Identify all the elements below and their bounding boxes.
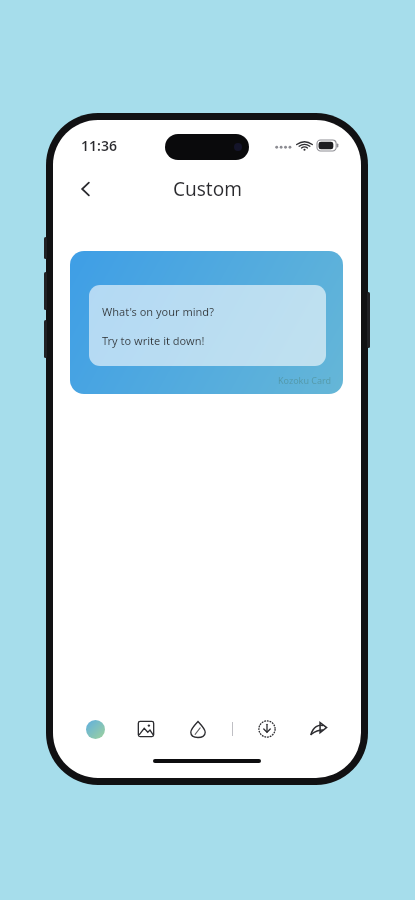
button[interactable]: Share bbox=[301, 711, 337, 747]
button[interactable]: Download bbox=[249, 711, 285, 747]
staticText: Try to write it down! bbox=[102, 333, 205, 348]
button[interactable]: Back bbox=[65, 168, 107, 210]
staticText: What's on your mind? bbox=[102, 304, 214, 319]
staticText: Kozoku Card bbox=[278, 374, 332, 386]
button[interactable]: What's on your mind? bbox=[70, 251, 343, 394]
button[interactable]: Opacity bbox=[180, 711, 216, 747]
staticText: Custom bbox=[173, 176, 242, 202]
button[interactable]: Image bbox=[128, 711, 164, 747]
staticText: 11:36 bbox=[81, 136, 117, 155]
button[interactable]: Color bbox=[77, 711, 113, 747]
